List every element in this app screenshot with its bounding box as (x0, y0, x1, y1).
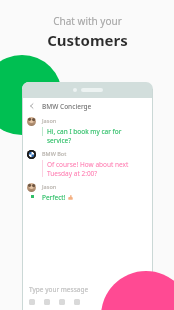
staticText: BMW Concierge (42, 102, 92, 111)
button[interactable]: Emoji (29, 299, 35, 305)
staticText: Of course! How about next Tuesday at 2:0… (47, 160, 147, 178)
button[interactable]: More (74, 299, 80, 305)
button[interactable]: Camera (59, 299, 65, 305)
button[interactable]: Back (28, 102, 36, 110)
staticText: Type your message (29, 285, 89, 294)
staticText: BMW Bot (42, 150, 67, 157)
button[interactable]: Jason (22, 183, 153, 202)
button[interactable]: Back (22, 98, 153, 114)
staticText: Jason (42, 183, 57, 190)
button[interactable]: BMW Bot (22, 150, 153, 178)
staticText: Customers (47, 30, 128, 50)
button[interactable]: Jason (22, 117, 153, 145)
staticText: Hi, can I book my car for service? (47, 127, 147, 145)
staticText: Perfect! (42, 193, 66, 202)
staticText: Jason (42, 117, 57, 124)
button[interactable]: Type your message (22, 285, 153, 310)
button[interactable]: Attach (44, 299, 50, 305)
staticText: Chat with your (53, 14, 122, 28)
